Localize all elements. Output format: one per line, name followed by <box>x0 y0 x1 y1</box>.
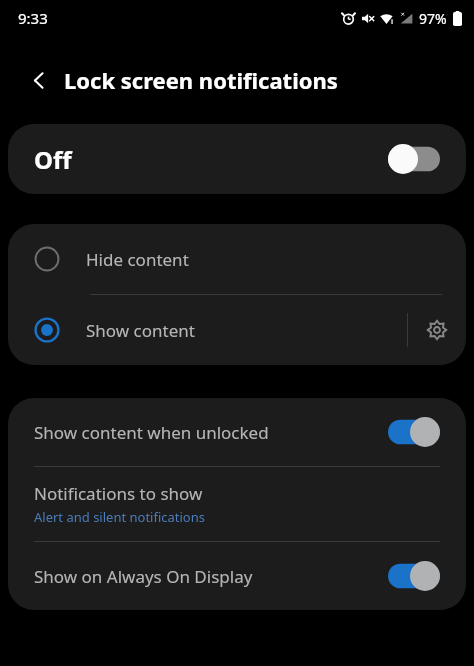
button[interactable]: Toggle on <box>388 561 440 591</box>
button[interactable]: Show content settings <box>408 295 466 365</box>
staticText: Show on Always On Display <box>34 565 388 588</box>
staticText: Off <box>34 143 388 176</box>
button[interactable]: Show content <box>8 295 407 365</box>
button[interactable]: Show content when unlocked <box>8 398 466 466</box>
staticText: Show content <box>86 319 195 342</box>
button[interactable]: Toggle off <box>388 144 440 174</box>
staticText: Lock screen notifications <box>64 65 338 95</box>
staticText: 97% <box>419 9 447 28</box>
staticText: Hide content <box>86 248 189 271</box>
button[interactable]: Toggle on <box>388 417 440 447</box>
button[interactable]: Hide content <box>8 224 466 294</box>
staticText: 9:33 <box>18 8 48 28</box>
staticText: Show content when unlocked <box>34 421 388 444</box>
staticText: Alert and silent notifications <box>34 508 205 526</box>
button[interactable]: Show on Always On Display <box>8 542 466 610</box>
staticText: Notifications to show <box>34 482 203 505</box>
button[interactable]: Back <box>22 63 56 97</box>
button[interactable]: Off <box>8 124 466 194</box>
button[interactable]: Notifications to show <box>8 467 466 541</box>
